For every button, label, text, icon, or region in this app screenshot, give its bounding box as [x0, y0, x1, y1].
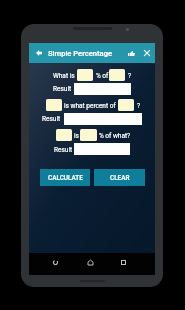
staticText: Result	[54, 146, 73, 154]
button[interactable]: CLEAR	[94, 169, 145, 186]
button[interactable]: Recents	[117, 256, 129, 268]
staticText: Result	[42, 115, 61, 123]
staticText: What is	[53, 72, 75, 80]
button[interactable]: Home	[84, 256, 96, 268]
staticText: Result	[53, 85, 72, 93]
button[interactable]	[46, 99, 62, 111]
button[interactable]: Like	[125, 47, 137, 59]
staticText: CALCULATE	[48, 174, 83, 182]
button[interactable]	[80, 129, 97, 141]
staticText: Simple Percentage	[48, 49, 113, 58]
staticText: CLEAR	[110, 174, 130, 182]
button[interactable]	[56, 129, 72, 141]
button[interactable]: Navigate up	[33, 47, 45, 59]
staticText: ?	[128, 72, 132, 80]
staticText: is what percent of	[64, 102, 116, 110]
button[interactable]	[77, 69, 93, 81]
staticText: is	[74, 132, 79, 140]
button[interactable]	[118, 99, 134, 111]
button[interactable]: CALCULATE	[40, 169, 90, 186]
button[interactable]: Close	[141, 47, 153, 59]
button[interactable]	[109, 69, 125, 81]
staticText: % of	[96, 72, 109, 80]
staticText: ?	[137, 102, 141, 110]
button[interactable]: Back	[49, 256, 61, 268]
staticText: % of what?	[99, 132, 131, 140]
